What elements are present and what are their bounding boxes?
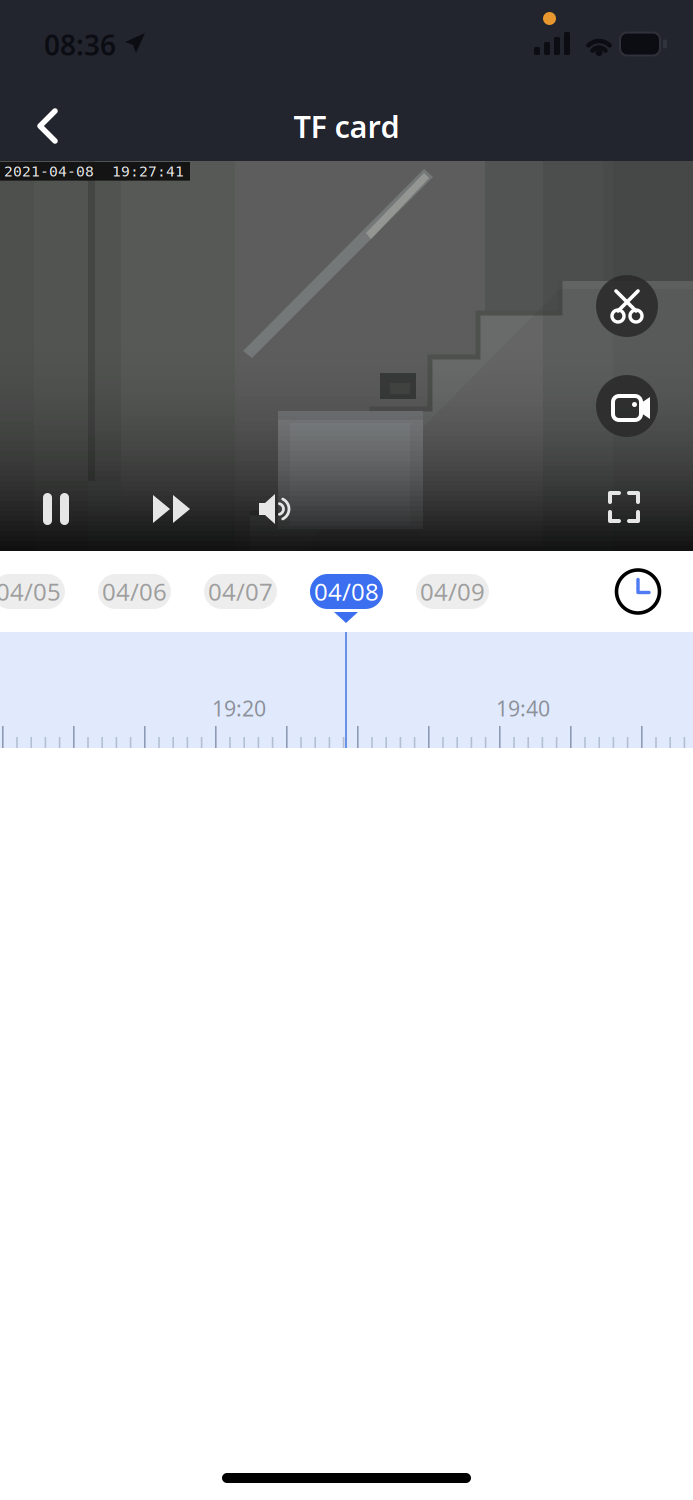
staticText: 08:36 xyxy=(44,26,116,63)
button[interactable]: 04/08 xyxy=(310,574,383,609)
button[interactable]: 04/05 xyxy=(0,574,65,609)
button[interactable]: Fast forward xyxy=(118,467,218,551)
staticText: 04/09 xyxy=(420,576,485,607)
staticText: 19:20 xyxy=(212,694,266,722)
button[interactable]: Clip xyxy=(596,275,658,337)
button[interactable]: 04/09 xyxy=(416,574,489,609)
button[interactable]: 04/07 xyxy=(204,574,277,609)
staticText: 04/07 xyxy=(208,576,273,607)
staticText: 04/08 xyxy=(314,576,379,607)
button[interactable]: Choose time xyxy=(600,557,693,625)
staticText: 19:40 xyxy=(496,694,550,722)
button[interactable]: Record xyxy=(596,375,658,437)
button[interactable]: Pause xyxy=(0,467,96,551)
button[interactable]: 04/06 xyxy=(98,574,171,609)
staticText: 04/06 xyxy=(102,576,167,607)
staticText: 04/05 xyxy=(0,576,61,607)
staticText: TF card xyxy=(293,106,399,146)
button[interactable]: Sound xyxy=(228,467,325,551)
button[interactable]: Back xyxy=(0,91,86,161)
staticText: 2021-04-08 19:27:41 xyxy=(4,163,184,180)
button[interactable]: Full screen xyxy=(578,467,693,551)
